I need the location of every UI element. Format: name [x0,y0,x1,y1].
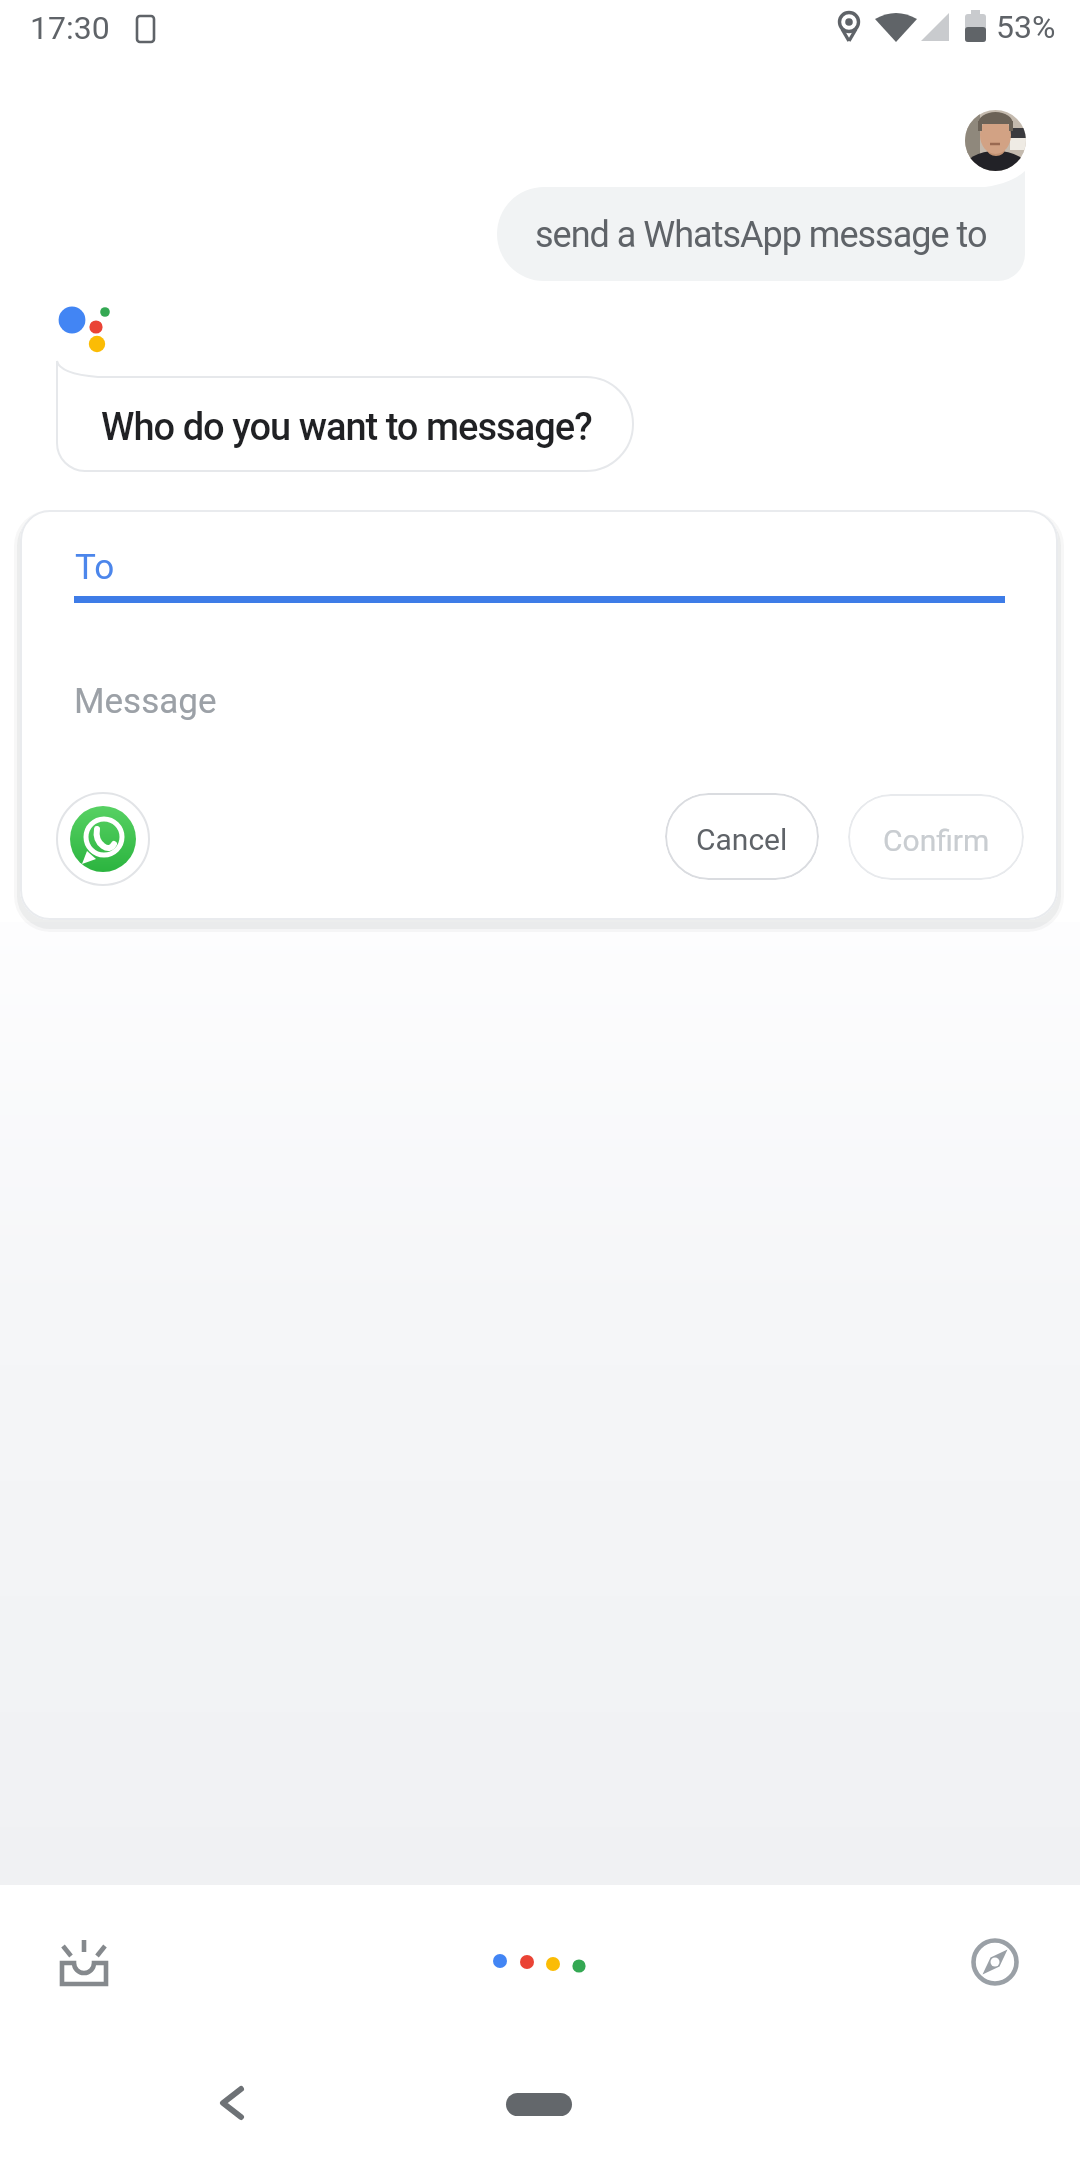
staticText: 17:30 [30,9,110,47]
button[interactable] [496,2083,582,2126]
staticText: Cancel [696,822,788,857]
button[interactable]: Confirm [848,794,1024,880]
button[interactable] [197,2068,267,2138]
button[interactable] [60,660,1035,740]
staticText: Message [74,681,217,722]
button[interactable] [60,530,1035,615]
staticText: Who do you want to message? [101,405,592,450]
staticText: send a WhatsApp message to [535,214,987,256]
button[interactable] [57,793,149,885]
button[interactable]: Cancel [665,793,819,880]
button[interactable] [951,1918,1039,2006]
staticText: Confirm [883,823,990,858]
staticText: To [75,547,115,588]
button[interactable] [40,1918,128,2006]
button[interactable] [965,110,1026,171]
button[interactable] [496,1918,584,2006]
staticText: 53% [996,8,1056,46]
